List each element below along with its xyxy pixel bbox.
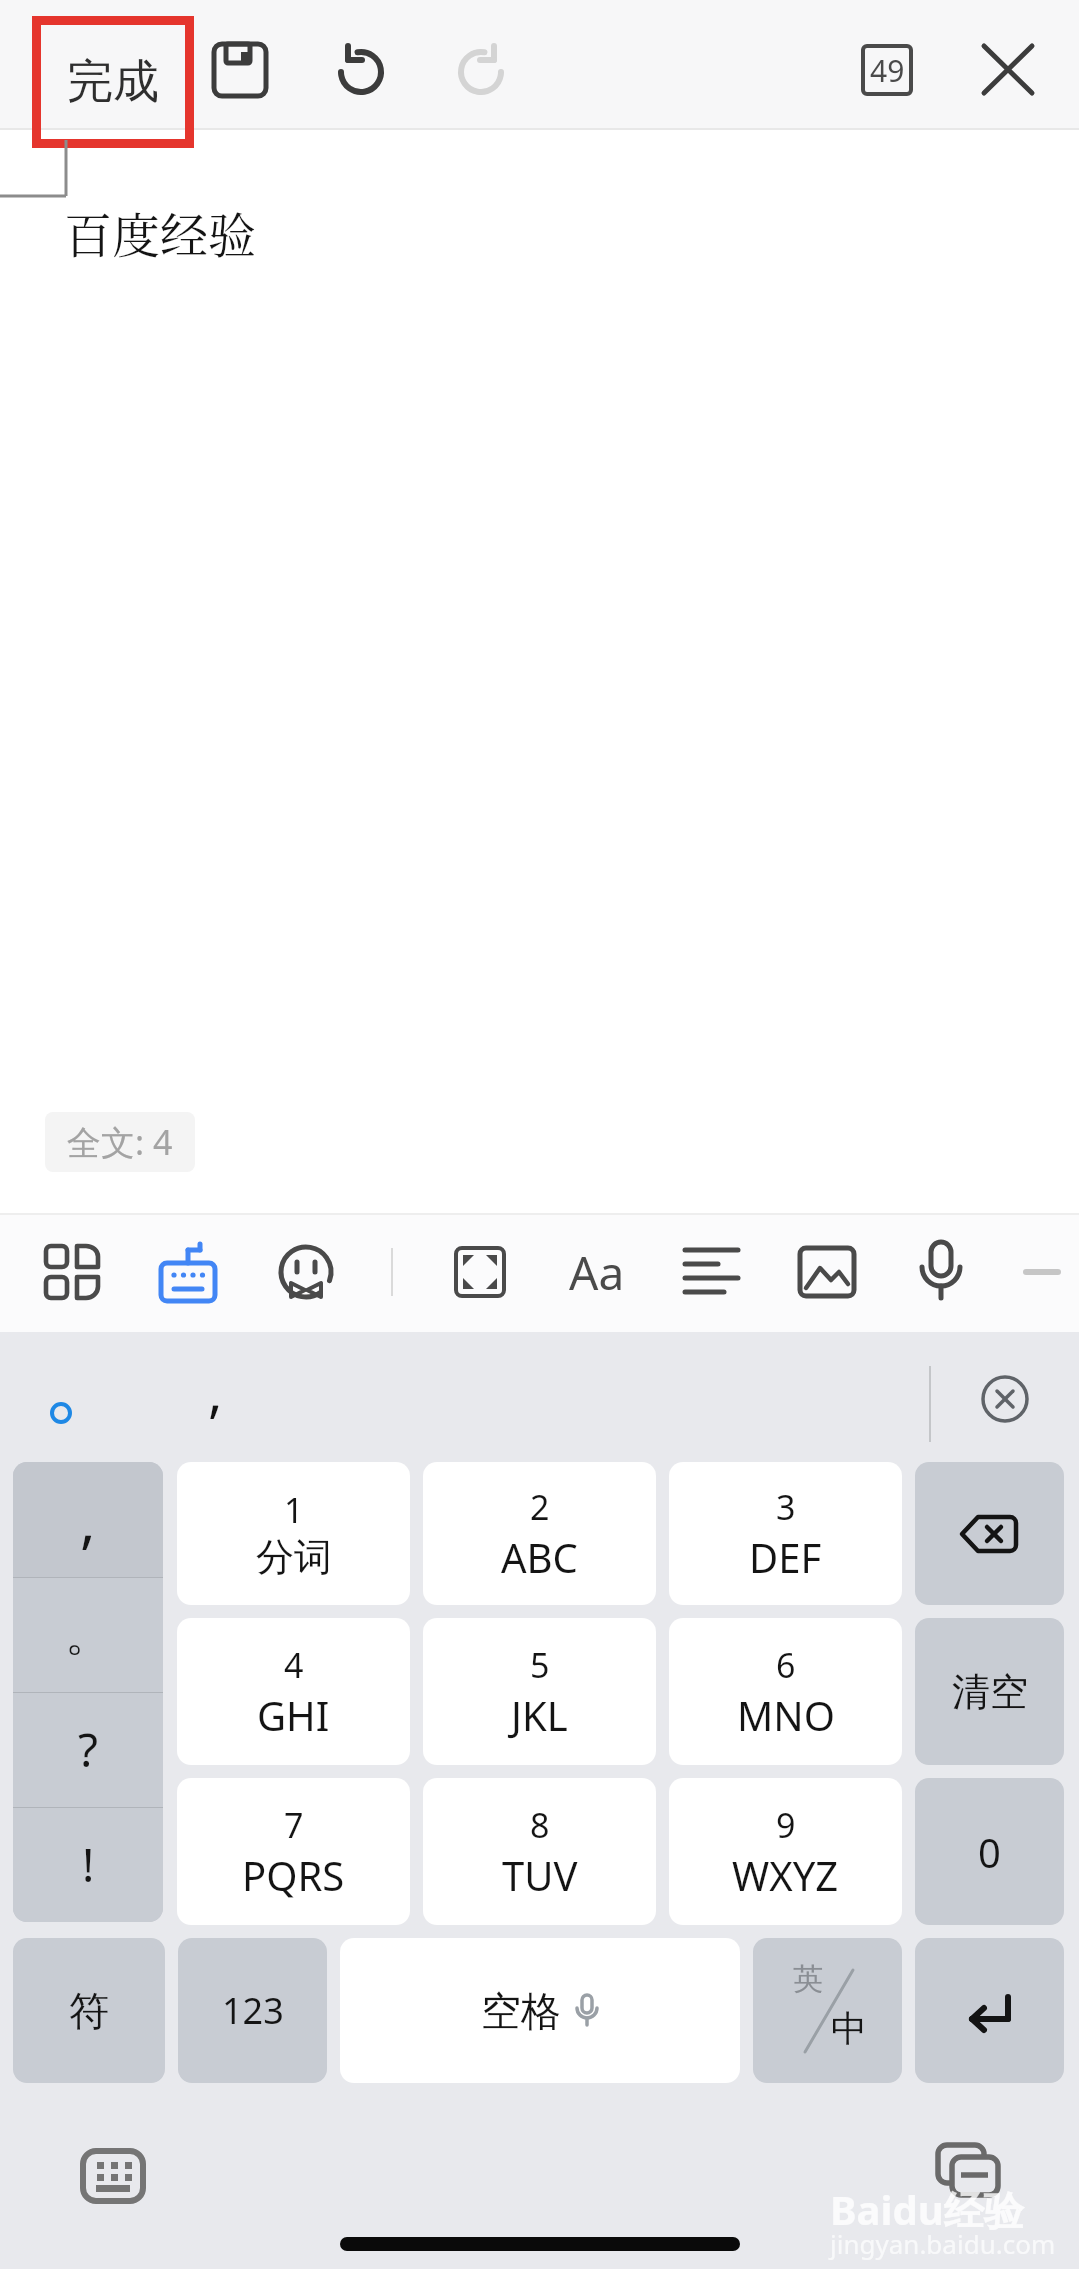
button[interactable]: 。 [13,1577,163,1692]
button[interactable]: 5 [423,1618,656,1765]
staticText: 7 [284,1802,304,1848]
staticText: 中 [831,2006,867,2051]
button[interactable]: Aa [562,1240,632,1304]
staticText: 4 [284,1642,304,1688]
button[interactable]: ? [13,1692,163,1807]
button[interactable] [454,44,508,96]
button[interactable]: 1 [177,1462,410,1605]
button[interactable] [80,2148,146,2204]
button[interactable]: 符 [13,1938,165,2083]
staticText: ABC [501,1530,578,1584]
button[interactable] [334,44,388,96]
staticText: 6 [776,1642,796,1688]
staticText: 49 [870,50,905,91]
staticText: 1 [284,1487,304,1533]
staticText: MNO [737,1688,835,1742]
staticText: 5 [530,1642,550,1688]
button[interactable] [278,1244,336,1302]
staticText: 9 [776,1802,796,1848]
staticText: 0 [978,1825,1001,1879]
button[interactable] [935,2142,1001,2200]
staticText: 百度经验 [64,198,257,267]
button[interactable] [44,1244,100,1300]
staticText: 2 [530,1484,550,1530]
button[interactable] [982,44,1034,96]
staticText: Baidu经验 [830,2182,1024,2237]
button[interactable] [916,1240,966,1304]
button[interactable] [915,1938,1064,2083]
button[interactable] [684,1248,740,1296]
staticText: 全文: 4 [67,1119,173,1165]
staticText: 8 [530,1802,550,1848]
button[interactable]: 2 [423,1462,656,1605]
button[interactable]: 7 [177,1778,410,1925]
staticText: ! [82,1833,95,1896]
staticText: 分词 [256,1533,332,1581]
staticText: ? [78,1718,98,1781]
staticText: WXYZ [732,1848,839,1902]
button[interactable]: , [13,1462,163,1577]
staticText: 符 [69,1986,109,2036]
staticText: 123 [222,1986,284,2035]
staticText: 清空 [952,1668,1028,1716]
staticText: JKL [511,1688,568,1742]
button[interactable]: ! [13,1807,163,1922]
button[interactable]: 英 [753,1938,902,2083]
button[interactable] [915,1462,1064,1605]
button[interactable]: 3 [669,1462,902,1605]
button[interactable] [160,1242,216,1302]
staticText: , [208,1354,223,1428]
staticText: 空格 [481,1986,561,2036]
button[interactable] [798,1246,856,1298]
button[interactable]: 49 [861,44,913,96]
button[interactable]: 123 [178,1938,327,2083]
staticText: 英 [793,1960,823,1998]
staticText: jingyan.baidu.com [830,2226,1056,2261]
button[interactable]: 完成 [32,16,194,148]
staticText: TUV [502,1848,578,1902]
button[interactable] [454,1246,506,1298]
staticText: 3 [776,1484,796,1530]
staticText: PQRS [242,1848,345,1902]
button[interactable]: 0 [915,1778,1064,1925]
staticText: Aa [569,1241,625,1304]
button[interactable] [980,1374,1030,1424]
staticText: GHI [257,1688,330,1742]
staticText: 完成 [67,53,159,111]
button[interactable]: 空格 [340,1938,740,2083]
button[interactable]: 8 [423,1778,656,1925]
staticText: , [80,1480,96,1559]
button[interactable]: 6 [669,1618,902,1765]
button[interactable] [212,42,268,98]
button[interactable]: 清空 [915,1618,1064,1765]
button[interactable]: 4 [177,1618,410,1765]
button[interactable]: 9 [669,1778,902,1925]
button[interactable]: , [185,1346,245,1436]
button[interactable] [1022,1266,1066,1278]
staticText: DEF [749,1530,822,1584]
staticText: 。 [65,1606,111,1664]
